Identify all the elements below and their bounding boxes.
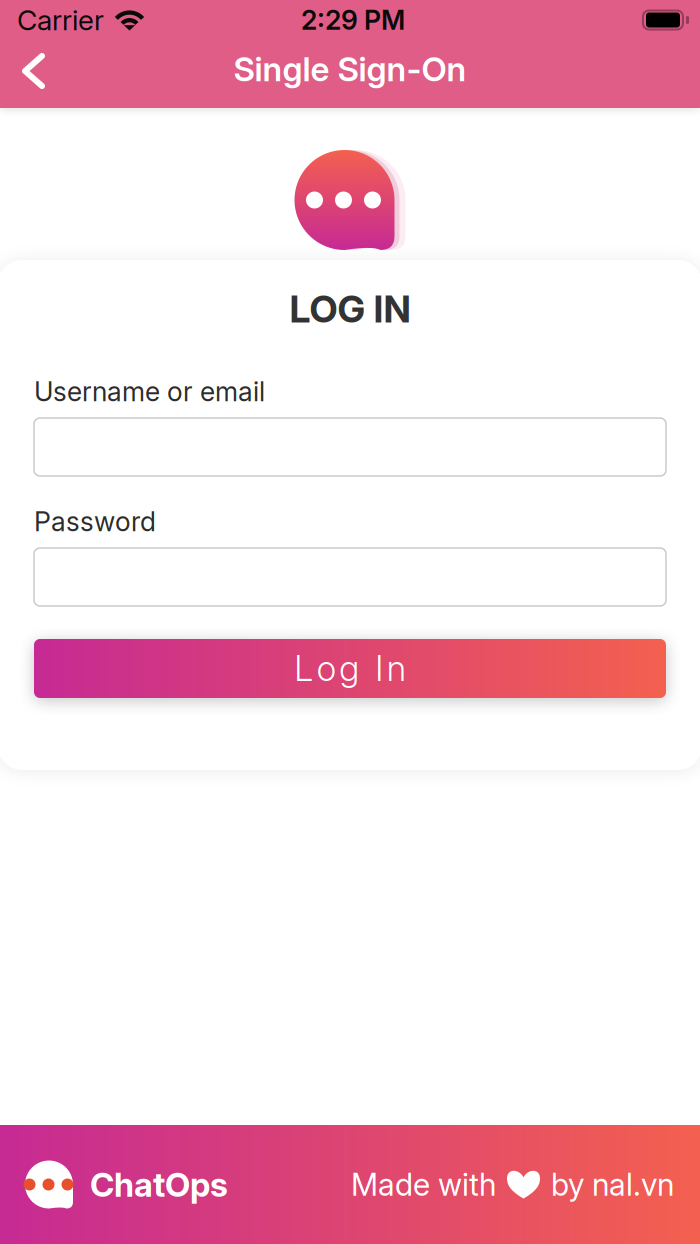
staticText: Carrier (17, 3, 104, 37)
button[interactable]: ChatOps (25, 1160, 228, 1208)
button[interactable]: Log In (34, 639, 666, 698)
staticText: Single Sign-On (233, 49, 466, 89)
button[interactable]: Back (0, 43, 70, 105)
staticText: Username or email (34, 375, 265, 408)
staticText: Log In (294, 647, 406, 689)
staticText: Password (34, 505, 156, 538)
staticText: LOG IN (289, 286, 410, 332)
staticText: 2:29 PM (301, 4, 405, 36)
staticText: Made with (351, 1166, 496, 1203)
staticText: ChatOps (90, 1164, 228, 1205)
staticText: by nal.vn (551, 1166, 674, 1203)
